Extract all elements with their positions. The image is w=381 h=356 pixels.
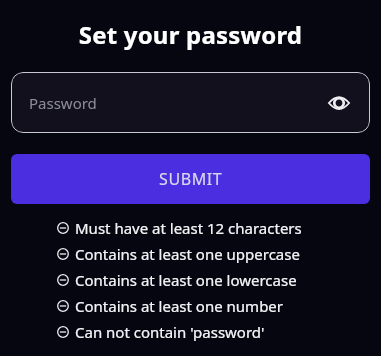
- button[interactable]: SUBMIT: [11, 154, 370, 204]
- staticText: Contains at least one lowercase: [75, 270, 297, 289]
- staticText: Must have at least 12 characters: [75, 218, 302, 237]
- button[interactable]: Password: [11, 72, 370, 133]
- staticText: Password: [29, 93, 322, 113]
- staticText: Can not contain 'password': [75, 322, 265, 341]
- button[interactable]: Show password: [322, 86, 356, 120]
- staticText: Contains at least one number: [75, 296, 284, 315]
- staticText: SUBMIT: [159, 168, 223, 190]
- staticText: Contains at least one uppercase: [75, 244, 300, 263]
- staticText: Set your password: [0, 18, 381, 51]
